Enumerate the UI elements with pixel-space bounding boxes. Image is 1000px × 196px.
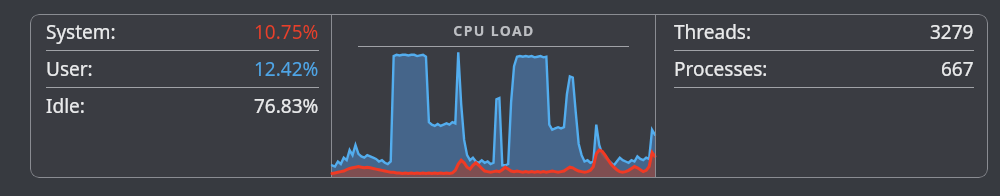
staticText: 10.75% [254,19,319,45]
staticText: Idle: [46,93,85,119]
button[interactable]: Threads: [674,14,974,50]
staticText: User: [46,56,93,82]
staticText: 12.42% [254,56,319,82]
staticText: Processes: [674,56,768,82]
button[interactable]: System: [46,14,319,50]
button[interactable]: CPU load graph [332,14,655,178]
button[interactable]: Processes: [674,51,974,87]
button[interactable]: Idle: [46,88,319,124]
staticText: 667 [941,56,974,82]
staticText: System: [46,19,116,45]
staticText: 76.83% [254,93,319,119]
staticText: CPU LOAD [453,21,535,40]
button[interactable]: User: [46,51,319,87]
staticText: 3279 [930,19,974,45]
staticText: Threads: [674,19,752,45]
